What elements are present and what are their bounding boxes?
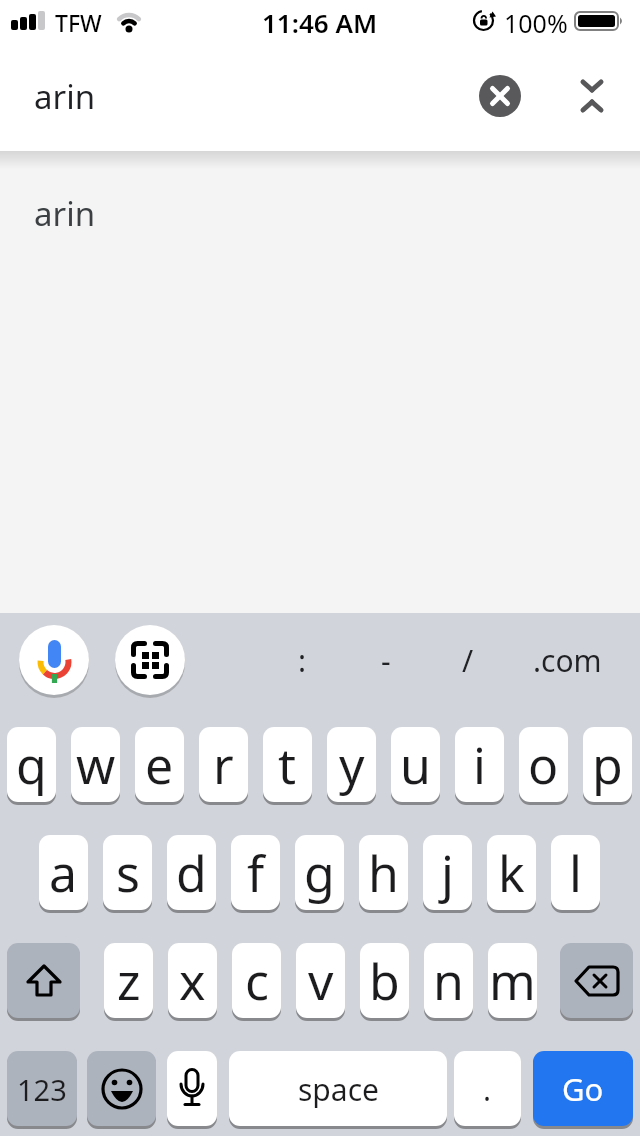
staticText: : [298, 640, 307, 681]
button[interactable]: v [296, 943, 345, 1019]
staticText: o [528, 731, 559, 799]
button[interactable]: r [199, 727, 248, 803]
button[interactable]: c [232, 943, 281, 1019]
button[interactable]: : [262, 635, 342, 685]
button[interactable]: arin [0, 178, 640, 248]
button[interactable]: . [454, 1051, 521, 1127]
staticText: 100% [504, 6, 568, 34]
staticText: i [473, 731, 486, 799]
button[interactable]: s [103, 835, 152, 911]
button[interactable] [87, 1051, 156, 1127]
button[interactable]: u [391, 727, 440, 803]
button[interactable]: h [359, 835, 408, 911]
button[interactable]: - [346, 635, 426, 685]
button[interactable]: 123 [7, 1051, 77, 1127]
staticText: v [308, 947, 334, 1015]
button[interactable] [19, 625, 89, 695]
staticText: 123 [17, 1070, 67, 1109]
staticText: m [489, 947, 536, 1015]
staticText: f [247, 839, 265, 907]
staticText: s [116, 839, 140, 907]
button[interactable]: z [104, 943, 153, 1019]
button[interactable]: w [71, 727, 120, 803]
button[interactable]: f [231, 835, 280, 911]
staticText: d [176, 839, 207, 907]
staticText: - [381, 640, 391, 681]
button[interactable]: o [519, 727, 568, 803]
staticText: r [213, 731, 234, 799]
staticText: e [145, 731, 174, 799]
button[interactable] [167, 1051, 217, 1127]
button[interactable]: x [168, 943, 217, 1019]
staticText: l [569, 839, 582, 907]
staticText: k [498, 839, 525, 907]
staticText: / [462, 640, 474, 681]
staticText: p [592, 731, 623, 799]
button[interactable]: j [423, 835, 472, 911]
button[interactable] [570, 70, 614, 122]
button[interactable] [479, 75, 521, 117]
button[interactable] [560, 943, 633, 1019]
button[interactable]: / [428, 635, 508, 685]
staticText: g [304, 839, 335, 907]
button[interactable]: b [360, 943, 409, 1019]
button[interactable] [115, 625, 185, 695]
button[interactable]: d [167, 835, 216, 911]
staticText: t [278, 731, 297, 799]
button[interactable]: p [583, 727, 632, 803]
button[interactable]: g [295, 835, 344, 911]
staticText: c [245, 947, 269, 1015]
staticText: x [179, 947, 206, 1015]
staticText: z [117, 947, 141, 1015]
button[interactable]: space [229, 1051, 447, 1127]
staticText: q [16, 731, 47, 799]
staticText: .com [533, 640, 602, 681]
button[interactable]: l [551, 835, 600, 911]
button[interactable]: q [7, 727, 56, 803]
staticText: h [368, 839, 399, 907]
button[interactable]: .com [527, 635, 607, 685]
staticText: TFW [55, 7, 102, 38]
staticText: . [483, 1069, 492, 1110]
button[interactable]: arin [0, 60, 460, 132]
button[interactable]: m [488, 943, 537, 1019]
staticText: y [339, 731, 365, 799]
button[interactable] [7, 943, 80, 1019]
button[interactable]: n [424, 943, 473, 1019]
staticText: n [433, 947, 464, 1015]
staticText: space [298, 1069, 379, 1110]
button[interactable]: y [327, 727, 376, 803]
staticText: w [76, 731, 116, 799]
staticText: arin [34, 191, 96, 236]
button[interactable]: e [135, 727, 184, 803]
button[interactable]: a [39, 835, 88, 911]
staticText: Go [562, 1068, 604, 1110]
button[interactable]: k [487, 835, 536, 911]
staticText: b [369, 947, 400, 1015]
staticText: a [49, 839, 78, 907]
staticText: j [441, 839, 454, 907]
button[interactable]: t [263, 727, 312, 803]
staticText: 11:46 AM [262, 5, 378, 35]
staticText: u [400, 731, 431, 799]
button[interactable]: Go [533, 1051, 633, 1127]
button[interactable]: i [455, 727, 504, 803]
staticText: arin [34, 74, 96, 119]
